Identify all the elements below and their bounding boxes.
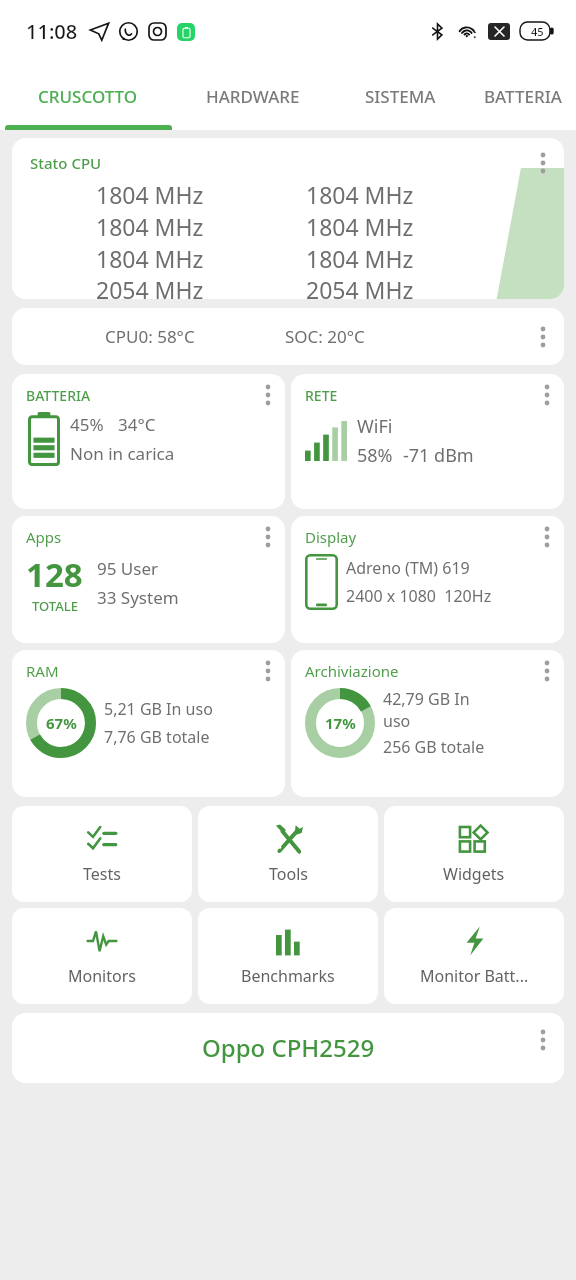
staticText: Tools bbox=[269, 863, 308, 885]
staticText: 128 bbox=[26, 552, 83, 597]
button[interactable]: Tools bbox=[198, 806, 378, 902]
staticText: TOTALE bbox=[32, 597, 78, 615]
staticText: 256 GB totale bbox=[383, 736, 485, 758]
button[interactable]: Oppo CPH2529 bbox=[12, 1013, 564, 1083]
button[interactable]: Tests bbox=[12, 806, 192, 902]
staticText: -71 dBm bbox=[403, 443, 474, 468]
button[interactable]: Apps bbox=[12, 516, 285, 643]
button[interactable]: HARDWARE bbox=[175, 62, 330, 130]
button[interactable]: More options bbox=[257, 524, 279, 550]
staticText: Widgets bbox=[443, 863, 505, 885]
staticText: Benchmarks bbox=[241, 965, 335, 987]
staticText: BATTERIA bbox=[26, 386, 91, 405]
staticText: Oppo CPH2529 bbox=[202, 1031, 375, 1064]
staticText: SISTEMA bbox=[365, 85, 436, 108]
staticText: 11:08 bbox=[26, 18, 78, 45]
staticText: 2054 MHz bbox=[96, 274, 204, 299]
staticText: 1804 MHz bbox=[96, 211, 204, 242]
staticText: 1804 MHz bbox=[306, 211, 414, 242]
staticText: 7,76 GB totale bbox=[104, 726, 210, 748]
staticText: WiFi bbox=[357, 414, 393, 439]
staticText: Monitors bbox=[68, 965, 136, 987]
staticText: RETE bbox=[305, 386, 338, 405]
button[interactable]: Widgets bbox=[384, 806, 564, 902]
button[interactable]: Stato CPU bbox=[12, 138, 564, 299]
button[interactable]: More options bbox=[536, 524, 558, 550]
staticText: CRUSCOTTO bbox=[38, 85, 138, 108]
button[interactable]: More options bbox=[257, 658, 279, 684]
staticText: uso bbox=[383, 710, 411, 732]
staticText: CPU0: 58°C bbox=[105, 325, 195, 348]
button[interactable]: More options bbox=[532, 1027, 554, 1053]
staticText: Monitor Batt... bbox=[420, 965, 529, 987]
button[interactable]: RETE bbox=[291, 374, 564, 509]
staticText: Display bbox=[305, 527, 357, 547]
staticText: Archiviazione bbox=[305, 661, 399, 681]
staticText: 67% bbox=[46, 713, 77, 733]
button[interactable]: Archiviazione bbox=[291, 650, 564, 797]
button[interactable]: More options bbox=[536, 658, 558, 684]
staticText: Tests bbox=[83, 863, 121, 885]
staticText: HARDWARE bbox=[206, 85, 300, 108]
staticText: 1804 MHz bbox=[96, 179, 204, 210]
staticText: 42,79 GB In bbox=[383, 688, 470, 710]
staticText: 1804 MHz bbox=[306, 179, 414, 210]
staticText: RAM bbox=[26, 661, 59, 681]
button[interactable]: Monitors bbox=[12, 908, 192, 1004]
staticText: Non in carica bbox=[70, 442, 175, 465]
staticText: 58% bbox=[357, 443, 393, 468]
staticText: SOC: 20°C bbox=[285, 325, 365, 348]
staticText: 1804 MHz bbox=[306, 243, 414, 274]
button[interactable]: CRUSCOTTO bbox=[0, 62, 175, 130]
staticText: BATTERIA bbox=[484, 85, 562, 108]
staticText: 33 System bbox=[97, 586, 179, 609]
button[interactable]: Monitor Batt... bbox=[384, 908, 564, 1004]
staticText: 5,21 GB In uso bbox=[104, 698, 213, 720]
staticText: 95 User bbox=[97, 557, 159, 580]
button[interactable]: More options bbox=[257, 382, 279, 408]
staticText: 34°C bbox=[118, 413, 156, 436]
button[interactable]: RAM bbox=[12, 650, 285, 797]
staticText: 1804 MHz bbox=[96, 243, 204, 274]
button[interactable]: More options bbox=[532, 324, 554, 350]
button[interactable]: More options bbox=[532, 150, 554, 176]
button[interactable]: CPU0: 58°C bbox=[12, 308, 564, 365]
button[interactable]: BATTERIA bbox=[12, 374, 285, 509]
button[interactable]: SISTEMA bbox=[330, 62, 470, 130]
staticText: 17% bbox=[325, 713, 356, 733]
button[interactable]: More options bbox=[536, 382, 558, 408]
staticText: Stato CPU bbox=[30, 153, 102, 173]
button[interactable]: Benchmarks bbox=[198, 908, 378, 1004]
staticText: 2054 MHz bbox=[306, 274, 414, 299]
staticText: 2400 x 1080 120Hz bbox=[346, 585, 492, 607]
staticText: Apps bbox=[26, 527, 62, 547]
staticText: 45 bbox=[531, 24, 544, 39]
button[interactable]: Display bbox=[291, 516, 564, 643]
staticText: Adreno (TM) 619 bbox=[346, 557, 470, 579]
button[interactable]: BATTERIA bbox=[470, 62, 576, 130]
staticText: 45% bbox=[70, 413, 104, 436]
